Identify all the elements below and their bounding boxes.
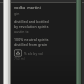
- staticText: vodka martini: [14, 5, 41, 10]
- staticText: 750 ml: [14, 57, 25, 61]
- button[interactable]: vodka martini: [14, 5, 74, 84]
- staticText: distilled from grain: [14, 42, 48, 47]
- staticText: austin tx: [14, 29, 29, 34]
- staticText: gin: [14, 11, 20, 16]
- staticText: 100% neutral spirits: [14, 37, 49, 42]
- staticText: distilled and bottled: [14, 19, 49, 24]
- staticText: % alc by vol: [24, 51, 43, 55]
- button[interactable]: Recycling information: [14, 49, 43, 57]
- staticText: by revolution spirits: [14, 24, 49, 29]
- button[interactable]: Recycling information: [14, 49, 22, 57]
